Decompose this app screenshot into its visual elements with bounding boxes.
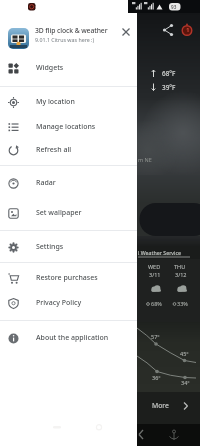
- staticText: Restore purchases: [36, 273, 98, 283]
- staticText: 34°: [181, 379, 190, 386]
- button[interactable]: My location: [0, 90, 137, 114]
- button[interactable]: Widgets: [0, 56, 137, 80]
- button[interactable]: Settings: [0, 235, 137, 259]
- staticText: Radar: [36, 178, 56, 188]
- staticText: 36°: [152, 374, 161, 381]
- button[interactable]: Set wallpaper: [0, 201, 137, 225]
- button[interactable]: More: [150, 399, 190, 413]
- button[interactable]: [117, 23, 134, 40]
- staticText: Widgets: [36, 63, 64, 73]
- staticText: 9.01.1 Citrus was here :): [35, 36, 95, 43]
- button[interactable]: Restore purchases: [0, 266, 137, 290]
- staticText: My location: [36, 97, 75, 107]
- staticText: l Weather Service: [138, 249, 181, 256]
- staticText: Manage locations: [36, 122, 96, 132]
- button[interactable]: Radar: [0, 171, 137, 195]
- staticText: 93: [171, 4, 177, 10]
- staticText: More: [152, 401, 169, 410]
- staticText: 3/12: [175, 271, 187, 278]
- staticText: 33%: [177, 300, 188, 307]
- staticText: 3D flip clock & weather: [35, 26, 108, 35]
- button[interactable]: Privacy Policy: [0, 291, 137, 315]
- staticText: m NE: [138, 156, 152, 163]
- staticText: 45°: [180, 350, 189, 357]
- button[interactable]: About the application: [0, 326, 137, 350]
- staticText: 57°: [151, 333, 160, 340]
- button[interactable]: Refresh all: [0, 138, 137, 162]
- staticText: 39°F: [162, 83, 176, 92]
- staticText: WED: [148, 263, 161, 270]
- staticText: 68%: [151, 300, 162, 307]
- staticText: Settings: [36, 242, 64, 252]
- staticText: 3/11: [149, 271, 161, 278]
- staticText: Set wallpaper: [36, 208, 82, 218]
- staticText: 1: [186, 26, 190, 34]
- staticText: Privacy Policy: [36, 298, 82, 308]
- staticText: THU: [174, 263, 186, 270]
- staticText: 68°F: [162, 69, 176, 78]
- button[interactable]: Manage locations: [0, 115, 137, 139]
- staticText: About the application: [36, 333, 109, 343]
- staticText: Refresh all: [36, 145, 72, 155]
